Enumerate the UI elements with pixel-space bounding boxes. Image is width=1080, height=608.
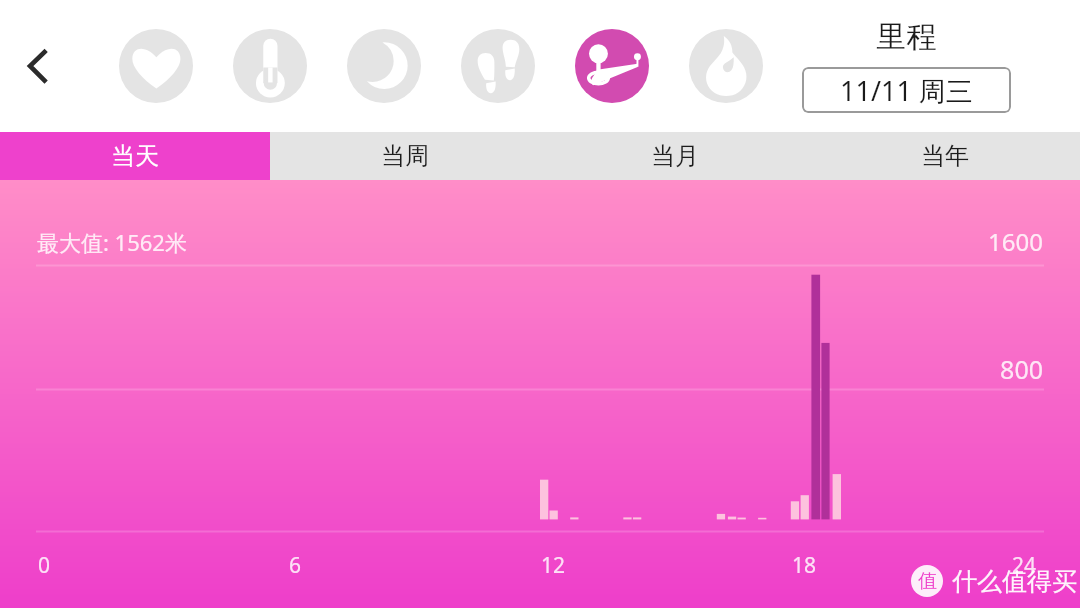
staticText: 1600 <box>0 225 1043 258</box>
button[interactable]: 当周 <box>270 132 540 180</box>
staticText: 值 <box>918 569 937 593</box>
button[interactable]: Calories <box>689 29 763 103</box>
staticText: 11/11 周三 <box>840 72 973 109</box>
staticText: 当周 <box>381 141 429 171</box>
staticText: 当年 <box>921 141 969 171</box>
staticText: 什么值得买 <box>952 566 1077 597</box>
staticText: 6 <box>289 551 302 580</box>
button[interactable]: 当月 <box>540 132 810 180</box>
staticText: 当月 <box>651 141 699 171</box>
button[interactable]: Distance <box>575 29 649 103</box>
button[interactable]: Back <box>6 36 66 96</box>
staticText: 里程 <box>802 18 1011 56</box>
staticText: 12 <box>541 551 566 580</box>
button[interactable]: 11/11 周三 <box>802 67 1011 113</box>
staticText: 最大值: 1562米 <box>37 227 187 257</box>
staticText: 当天 <box>111 141 159 171</box>
button[interactable]: 当年 <box>810 132 1080 180</box>
staticText: 800 <box>0 352 1043 386</box>
staticText: 24 <box>1012 551 1037 580</box>
staticText: 0 <box>38 551 51 580</box>
button[interactable]: Sleep <box>347 29 421 103</box>
button[interactable]: Heart rate <box>119 29 193 103</box>
button[interactable]: Steps <box>461 29 535 103</box>
button[interactable]: 当天 <box>0 132 270 180</box>
button[interactable]: Temperature <box>233 29 307 103</box>
staticText: 18 <box>792 551 817 580</box>
